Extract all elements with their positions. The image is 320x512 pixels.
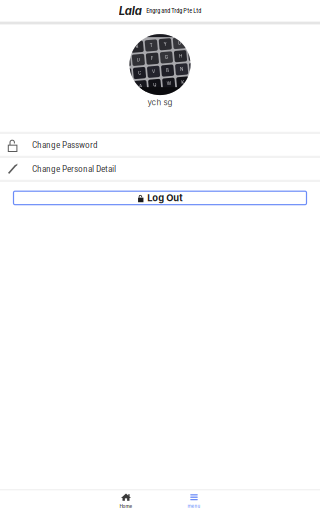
staticText: N: [180, 69, 183, 74]
staticText: Q: [151, 82, 154, 87]
staticText: A: [137, 82, 140, 87]
staticText: G: [165, 55, 168, 61]
button[interactable]: Change Password: [0, 134, 320, 156]
staticText: H: [180, 55, 183, 61]
button[interactable]: Change Personal Detail: [0, 158, 320, 180]
staticText: Engrg and Trdg Pte Ltd: [146, 7, 201, 15]
staticText: F: [151, 55, 154, 61]
staticText: Change Personal Detail: [32, 163, 116, 174]
button[interactable]: Log Out: [13, 191, 306, 205]
staticText: Change Password: [32, 139, 98, 150]
staticText: Lala: [119, 4, 142, 18]
staticText: C: [137, 69, 140, 74]
staticText: B: [165, 69, 168, 74]
staticText: V: [151, 69, 154, 74]
staticText: R: [137, 42, 140, 47]
staticText: Home: [119, 503, 132, 509]
button[interactable]: menu: [177, 491, 211, 511]
button[interactable]: Home: [109, 491, 143, 511]
staticText: Y: [165, 42, 168, 47]
staticText: T: [151, 42, 154, 47]
staticText: W: [165, 82, 169, 87]
staticText: K: [180, 82, 183, 87]
staticText: U: [180, 42, 183, 47]
staticText: ych sg: [147, 98, 172, 107]
staticText: D: [137, 55, 140, 61]
staticText: menu: [187, 503, 200, 509]
staticText: Log Out: [147, 192, 182, 204]
